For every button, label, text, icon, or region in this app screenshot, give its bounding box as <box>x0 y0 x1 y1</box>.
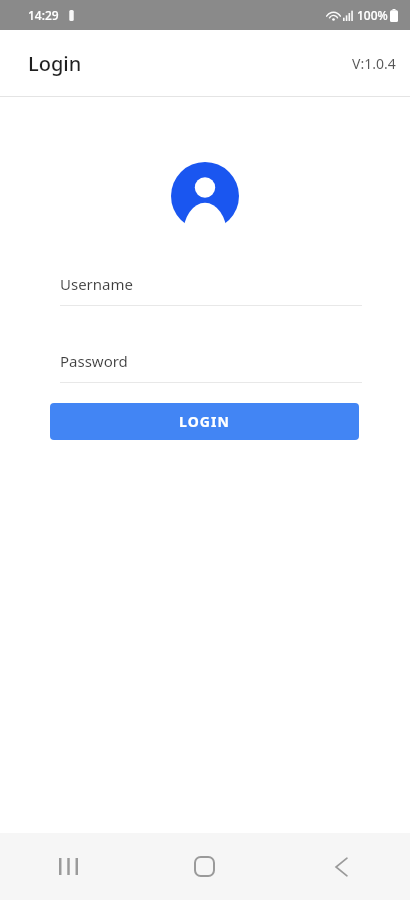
staticText: LOGIN <box>179 412 231 431</box>
button[interactable]: LOGIN <box>50 403 359 440</box>
staticText: Login <box>28 50 82 77</box>
staticText: Username <box>60 274 133 294</box>
button[interactable]: Recent apps <box>0 833 136 900</box>
staticText: 100% <box>357 7 388 23</box>
button[interactable]: Username <box>60 273 362 295</box>
staticText: Password <box>60 351 128 371</box>
button[interactable]: Home <box>136 833 273 900</box>
staticText: 14:29 <box>28 7 59 23</box>
button[interactable]: Password <box>60 350 362 372</box>
button[interactable]: Back <box>273 833 410 900</box>
staticText: V:1.0.4 <box>352 54 396 73</box>
